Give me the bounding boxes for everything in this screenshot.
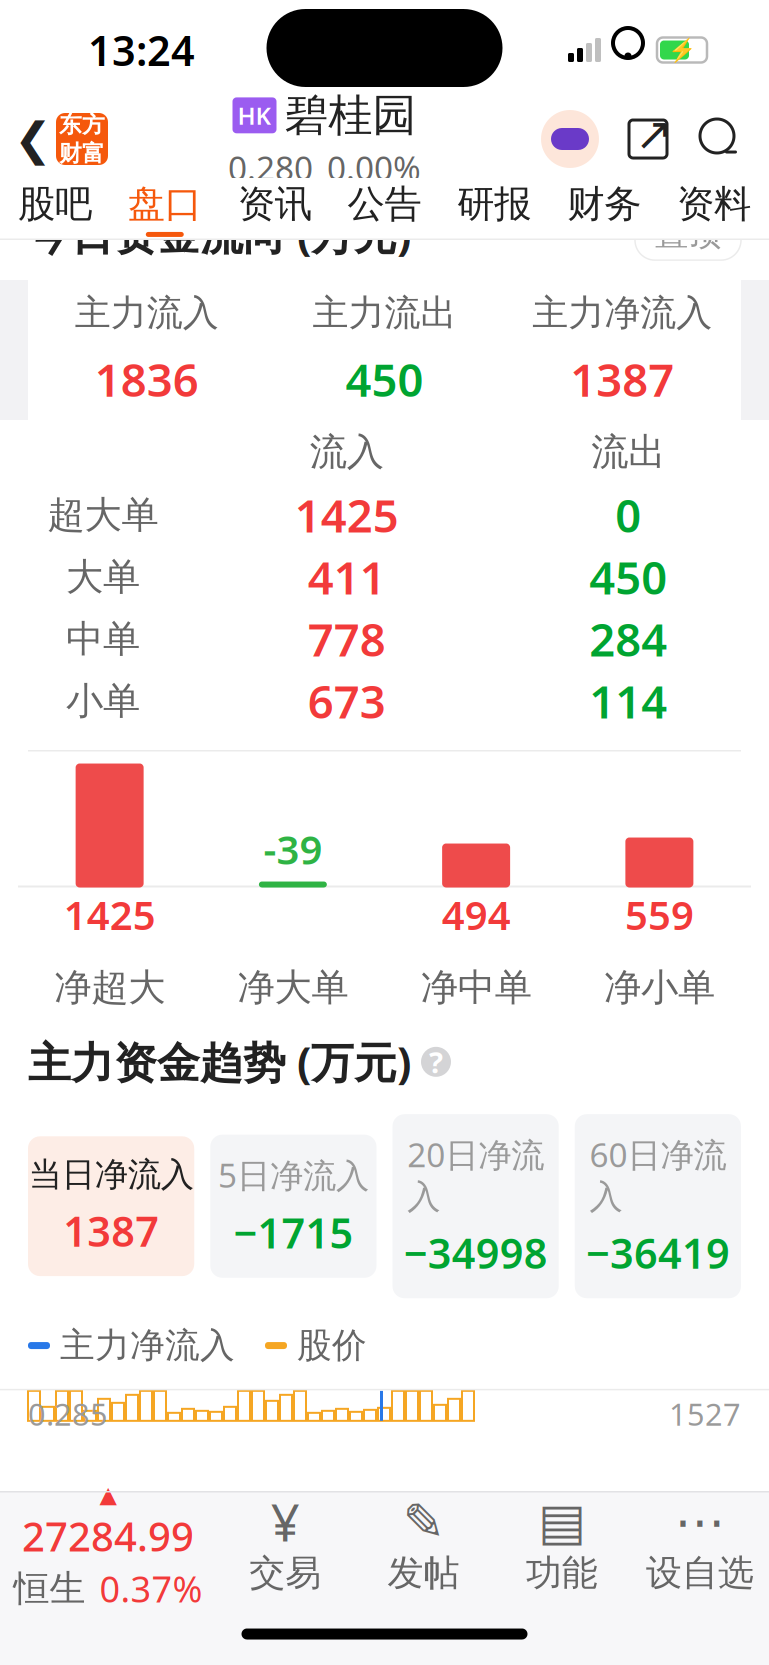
- staticText: 27284.99: [22, 1509, 194, 1562]
- staticText: 净中单: [421, 965, 532, 1010]
- staticText: 60日净流入: [589, 1132, 726, 1217]
- staticText: −34998: [404, 1225, 548, 1280]
- staticText: 大单: [66, 554, 140, 600]
- button[interactable]: 当日净流入: [28, 1136, 194, 1276]
- staticText: 1425: [295, 485, 399, 545]
- staticText: 资讯: [238, 181, 312, 227]
- button[interactable]: 资料: [659, 178, 769, 240]
- button[interactable]: 公告: [330, 178, 439, 240]
- staticText: 公告: [347, 181, 421, 227]
- button[interactable]: 功能: [492, 1491, 631, 1603]
- staticText: −36419: [586, 1225, 730, 1280]
- button[interactable]: 财务: [549, 178, 659, 240]
- button[interactable]: 返回: [10, 106, 56, 172]
- button[interactable]: 恒生指数: [0, 1491, 216, 1603]
- staticText: 494: [442, 888, 511, 941]
- button[interactable]: 资讯: [220, 178, 330, 240]
- staticText: 功能: [526, 1551, 598, 1595]
- staticText: 0.37%: [99, 1564, 202, 1612]
- staticText: 1527: [669, 1393, 741, 1434]
- staticText: ↗: [635, 108, 673, 160]
- button[interactable]: 60日净流入: [575, 1114, 741, 1298]
- button[interactable]: 交易: [216, 1491, 354, 1603]
- staticText: 今日资金流向 (万元): [28, 205, 411, 262]
- staticText: ▲: [99, 1482, 116, 1507]
- button[interactable]: 20日净流入: [392, 1114, 559, 1298]
- button[interactable]: 5日净流入: [210, 1135, 376, 1278]
- button[interactable]: 说明: [421, 1047, 451, 1077]
- staticText: 发帖: [387, 1551, 459, 1595]
- staticText: 主力净流入: [60, 1324, 235, 1367]
- staticText: 284: [589, 609, 667, 669]
- staticText: 主力流出: [312, 291, 456, 335]
- staticText: 小单: [66, 678, 140, 724]
- button[interactable]: 盘口: [110, 178, 220, 240]
- staticText: -39: [263, 822, 322, 875]
- button[interactable]: 研报: [439, 178, 549, 240]
- button[interactable]: 置顶: [635, 207, 741, 260]
- staticText: 置顶: [655, 213, 721, 254]
- staticText: ⚡: [668, 37, 696, 63]
- staticText: 资料: [677, 181, 751, 227]
- staticText: 中单: [66, 616, 140, 662]
- staticText: 1836: [95, 349, 199, 409]
- button[interactable]: 东方财富首页: [56, 113, 108, 165]
- staticText: 411: [308, 547, 386, 607]
- button[interactable]: 股吧: [0, 178, 110, 240]
- staticText: ✎: [402, 1493, 444, 1551]
- staticText: 盘口: [128, 181, 202, 227]
- staticText: ¥: [271, 1488, 300, 1555]
- staticText: 东方: [59, 111, 105, 138]
- staticText: 当日净流入: [29, 1154, 194, 1195]
- staticText: 13:24: [88, 23, 195, 77]
- staticText: 1425: [64, 888, 156, 941]
- staticText: 净小单: [604, 965, 715, 1010]
- staticText: 673: [308, 671, 386, 731]
- staticText: 恒生: [13, 1566, 85, 1610]
- staticText: 主力资金趋势 (万元): [28, 1033, 411, 1090]
- button[interactable]: 分享: [625, 116, 671, 162]
- staticText: 1387: [63, 1203, 159, 1258]
- staticText: 778: [308, 609, 386, 669]
- staticText: 流出: [591, 429, 665, 475]
- staticText: 5日净流入: [218, 1153, 369, 1197]
- staticText: 0.285: [28, 1393, 108, 1434]
- staticText: ▤: [538, 1493, 586, 1551]
- staticText: 20日净流入: [407, 1132, 544, 1217]
- staticText: 450: [345, 349, 423, 409]
- staticText: 450: [589, 547, 667, 607]
- staticText: 114: [589, 671, 667, 731]
- staticText: 股吧: [18, 181, 92, 227]
- staticText: 交易: [249, 1551, 321, 1595]
- staticText: 0.280: [228, 145, 313, 190]
- staticText: 股价: [297, 1324, 367, 1367]
- staticText: 1387: [570, 349, 674, 409]
- staticText: ?: [429, 1042, 443, 1081]
- button[interactable]: 发帖: [354, 1491, 492, 1603]
- staticText: 流入: [310, 429, 384, 475]
- button[interactable]: 搜索: [697, 116, 743, 162]
- staticText: 财富: [59, 139, 105, 167]
- staticText: 净大单: [237, 965, 348, 1010]
- staticText: 主力流入: [75, 291, 219, 335]
- staticText: 主力净流入: [532, 291, 712, 335]
- staticText: 559: [625, 888, 694, 941]
- button[interactable]: 设自选: [631, 1491, 769, 1603]
- staticText: 研报: [457, 181, 531, 227]
- staticText: 0.00%: [327, 145, 421, 190]
- staticText: 设自选: [646, 1551, 754, 1595]
- staticText: ❮: [14, 113, 52, 165]
- staticText: ⋯: [674, 1493, 725, 1551]
- staticText: 0: [615, 485, 641, 545]
- staticText: 超大单: [47, 492, 158, 538]
- staticText: HK: [237, 99, 271, 131]
- staticText: 财务: [567, 181, 641, 227]
- staticText: 碧桂园: [284, 88, 416, 142]
- staticText: −1715: [233, 1205, 353, 1260]
- button[interactable]: AI 助手: [541, 110, 599, 168]
- staticText: 净超大: [54, 965, 165, 1010]
